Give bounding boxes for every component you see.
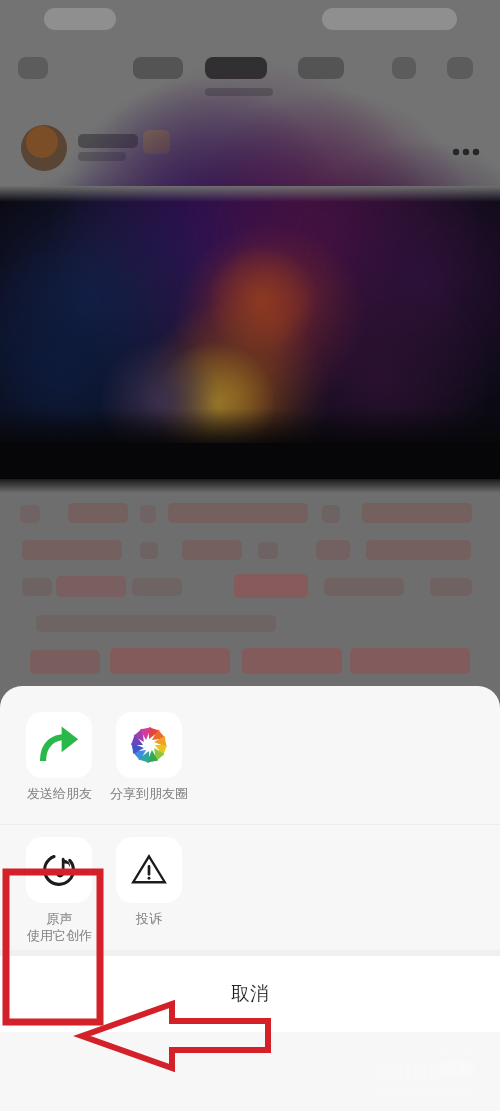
staticText: 发送给朋友: [27, 785, 92, 801]
staticText: 原声 使用它创作: [27, 910, 92, 944]
button[interactable]: Original sound, create with it: [14, 833, 104, 944]
button[interactable]: Share to Moments: [104, 708, 194, 801]
staticText: 投诉: [136, 910, 162, 926]
staticText: 分享到朋友圈: [110, 785, 188, 801]
button[interactable]: Report: [104, 833, 194, 926]
button[interactable]: 取消: [0, 956, 500, 1032]
button[interactable]: Send to friend: [14, 708, 104, 801]
staticText: 取消: [231, 982, 269, 1006]
